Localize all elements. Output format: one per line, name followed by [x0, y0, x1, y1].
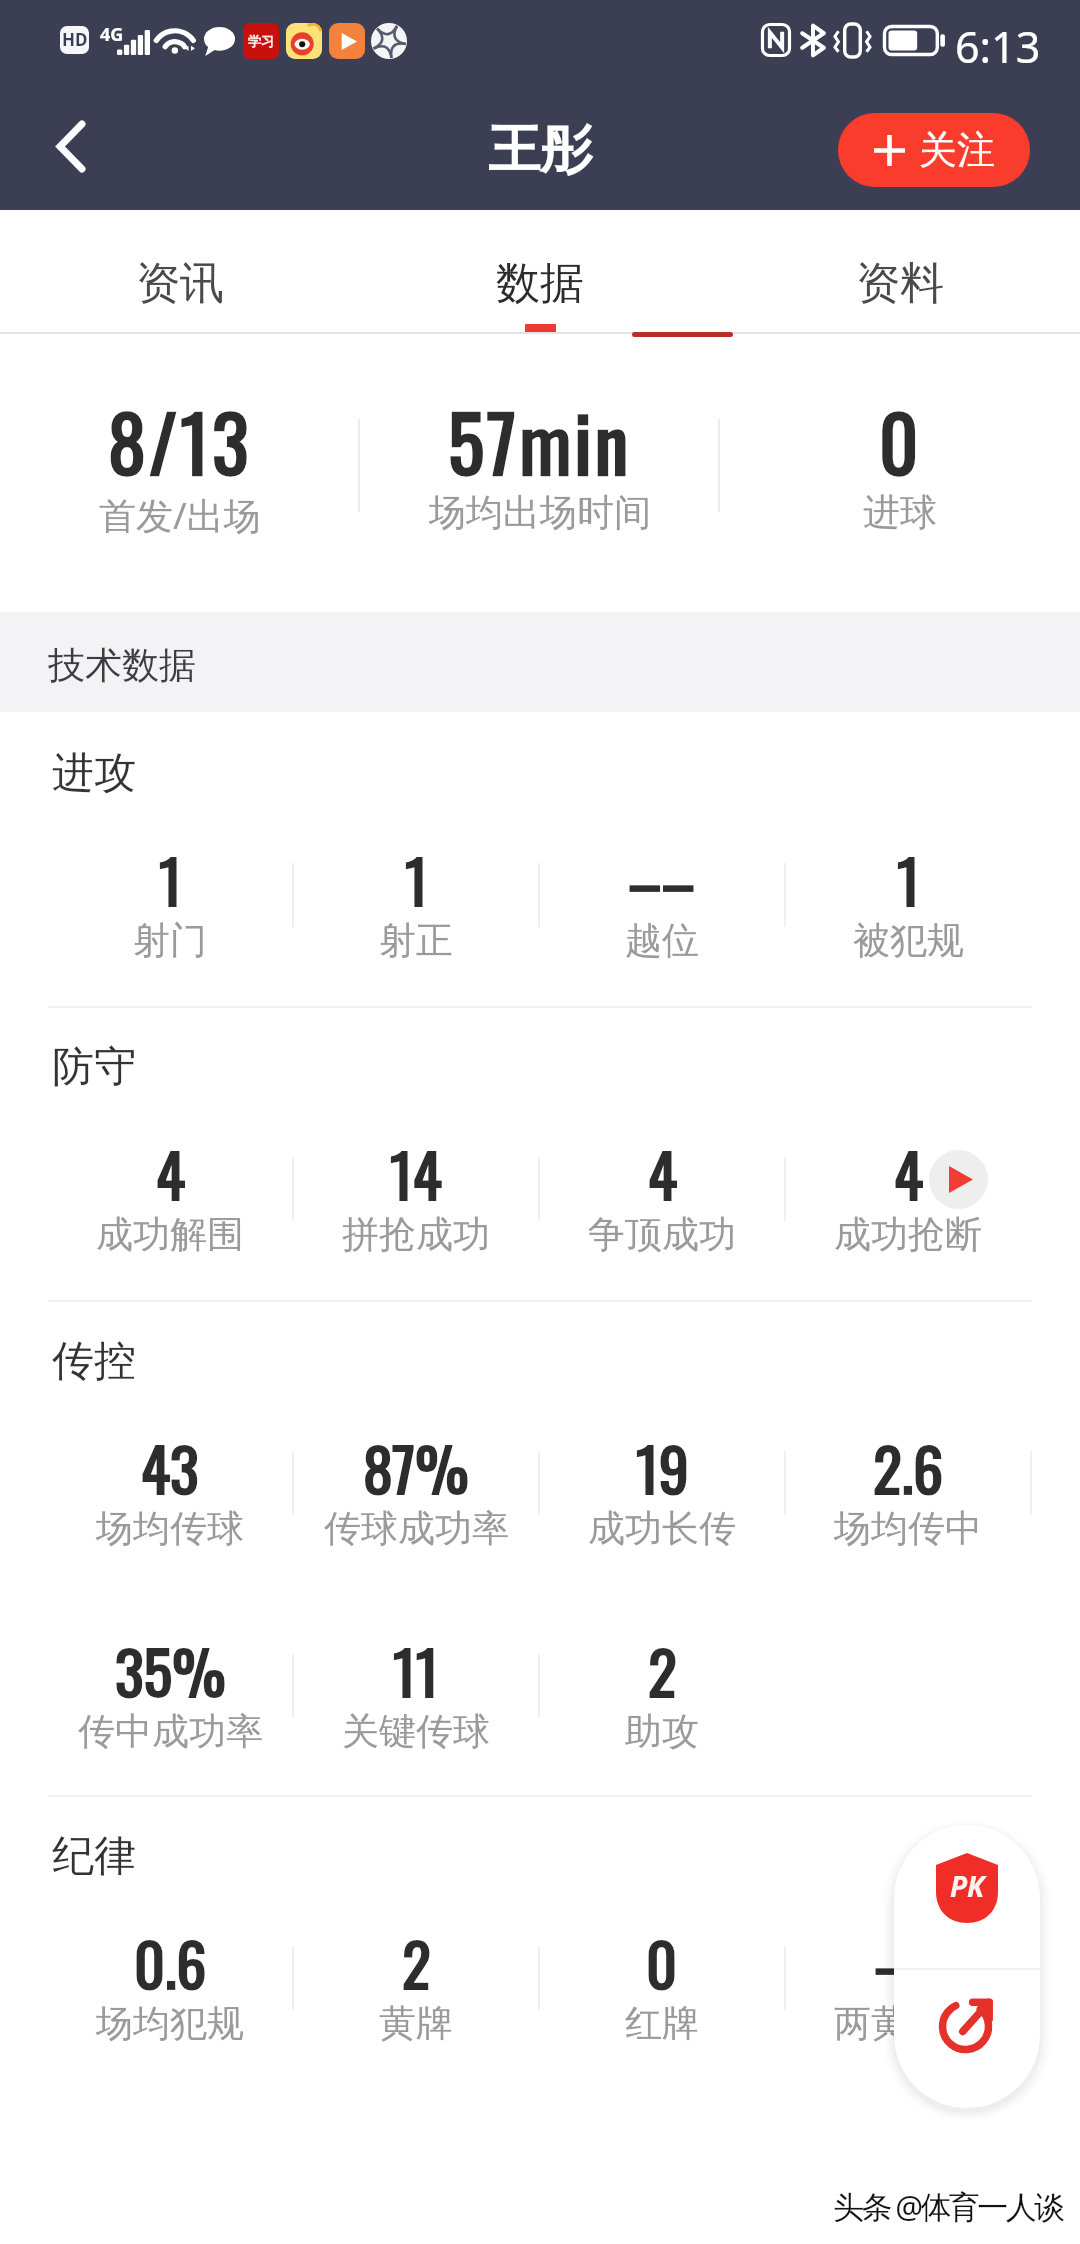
button[interactable]: 43 [47, 1431, 293, 1581]
staticText: 场均出场时间 [429, 489, 651, 536]
button[interactable]: PK [894, 1825, 1040, 1968]
button[interactable]: 0 [720, 334, 1080, 612]
button[interactable]: Back [20, 90, 130, 210]
staticText: 数据 [496, 256, 584, 311]
staticText: 关键传球 [342, 1708, 490, 1755]
staticText: 场均传球 [96, 1505, 244, 1552]
staticText: 传球成功率 [324, 1505, 509, 1552]
staticText: HD [62, 28, 88, 51]
button[interactable]: 11 [293, 1634, 539, 1784]
button[interactable]: 4 [785, 1137, 1031, 1287]
button[interactable]: 19 [539, 1431, 785, 1581]
staticText: 2.6 [873, 1422, 944, 1511]
staticText: 传控 [52, 1335, 136, 1388]
button[interactable]: 4 [47, 1137, 293, 1287]
staticText: 王彤 [488, 117, 592, 183]
staticText: 19 [636, 1422, 689, 1511]
button[interactable]: 4 [539, 1137, 785, 1287]
staticText: 4G [100, 22, 124, 47]
staticText: –– [628, 834, 696, 923]
staticText: 43 [141, 1422, 199, 1511]
staticText: 1 [897, 834, 920, 923]
staticText: 35% [115, 1625, 226, 1714]
staticText: 关注 [919, 126, 995, 174]
staticText: 头条 @体育一人谈 [833, 2185, 1063, 2227]
staticText: 被犯规 [853, 917, 964, 964]
staticText: 2 [402, 1917, 431, 2006]
button[interactable]: 57min [360, 334, 720, 612]
button[interactable]: 数据 [360, 210, 720, 334]
staticText: 场均传中 [834, 1505, 982, 1552]
staticText: 争顶成功 [588, 1211, 736, 1258]
button[interactable]: –– [785, 1926, 1031, 2076]
staticText: 进攻 [52, 747, 136, 800]
button[interactable]: 87% [293, 1431, 539, 1581]
button[interactable]: 1 [785, 843, 1031, 993]
staticText: 首发/出场 [99, 489, 261, 540]
button[interactable]: –– [539, 843, 785, 993]
staticText: –– [874, 1917, 942, 2006]
staticText: 0 [879, 384, 922, 497]
staticText: 越位 [625, 917, 699, 964]
staticText: 黄牌 [379, 2000, 453, 2047]
staticText: 红牌 [625, 2000, 699, 2047]
staticText: 6:13 [955, 17, 1041, 76]
staticText: 4 [894, 1128, 923, 1217]
staticText: 4 [156, 1128, 185, 1217]
button[interactable]: Share [894, 1970, 1040, 2080]
staticText: 14 [390, 1128, 442, 1217]
staticText: 资讯 [136, 256, 224, 311]
staticText: 成功长传 [588, 1505, 736, 1552]
staticText: 成功解围 [96, 1211, 244, 1258]
button[interactable]: 1 [293, 843, 539, 993]
staticText: 助攻 [625, 1708, 699, 1755]
button[interactable]: 1 [47, 843, 293, 993]
button[interactable]: 35% [47, 1634, 293, 1784]
staticText: 射正 [379, 917, 453, 964]
button[interactable]: 8/13 [0, 334, 360, 612]
staticText: 1 [405, 834, 428, 923]
staticText: 8/13 [108, 384, 252, 497]
staticText: 57min [448, 384, 632, 497]
staticText: PK [950, 1867, 985, 1905]
staticText: 拼抢成功 [342, 1211, 490, 1258]
staticText: 纪律 [52, 1830, 136, 1883]
staticText: 进球 [863, 489, 937, 536]
staticText: 成功抢断 [834, 1211, 982, 1258]
staticText: 11 [393, 1625, 439, 1714]
staticText: 0.6 [134, 1917, 207, 2006]
button[interactable]: 资料 [720, 210, 1080, 334]
button[interactable]: 2 [539, 1634, 785, 1784]
staticText: 射门 [133, 917, 207, 964]
button[interactable]: 2 [293, 1926, 539, 2076]
staticText: 防守 [52, 1041, 136, 1094]
button[interactable]: Play video [929, 1150, 988, 1209]
staticText: 资料 [856, 256, 944, 311]
staticText: 技术数据 [48, 642, 196, 689]
button[interactable]: 2.6 [785, 1431, 1031, 1581]
staticText: 4 [648, 1128, 677, 1217]
staticText: 场均犯规 [96, 2000, 244, 2047]
button[interactable]: 14 [293, 1137, 539, 1287]
button[interactable]: 资讯 [0, 210, 360, 334]
staticText: 87% [363, 1422, 469, 1511]
staticText: 传中成功率 [78, 1708, 263, 1755]
button[interactable]: 0.6 [47, 1926, 293, 2076]
staticText: 1 [159, 834, 182, 923]
button[interactable]: 0 [539, 1926, 785, 2076]
staticText: 学习 [248, 33, 274, 49]
staticText: 0 [646, 1917, 678, 2006]
button[interactable]: 关注 [838, 113, 1030, 187]
staticText: 2 [648, 1625, 677, 1714]
staticText: 两黄变红 [834, 2000, 982, 2047]
